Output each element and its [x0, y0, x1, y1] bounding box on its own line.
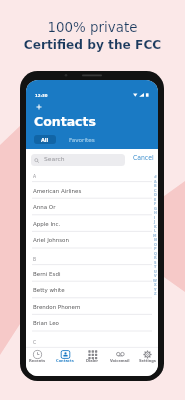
staticText: 12:30 — [35, 93, 48, 98]
button[interactable]: Recents — [26, 347, 50, 376]
staticText: C — [33, 340, 37, 345]
staticText: Settings — [139, 359, 156, 363]
staticText: B — [33, 257, 37, 262]
button[interactable]: Alphabet index — [151, 172, 158, 282]
button[interactable]: Ariel Johnson — [26, 231, 158, 248]
button[interactable]: Favorites — [69, 136, 95, 144]
button[interactable]: All — [34, 135, 56, 144]
button[interactable]: Settings — [134, 347, 158, 376]
staticText: U — [154, 270, 157, 274]
button[interactable]: Contacts — [52, 347, 78, 376]
button[interactable]: American Airlines — [26, 182, 158, 199]
button[interactable]: Betty white — [26, 281, 158, 298]
button[interactable]: Voicemail — [107, 347, 133, 376]
staticText: Contacts — [56, 359, 74, 363]
staticText: Anna Or — [33, 204, 56, 210]
button[interactable]: Apple Inc. — [26, 215, 158, 232]
staticText: Ariel Johnson — [33, 237, 69, 243]
staticText: Search — [44, 155, 65, 162]
button[interactable]: Berni Esdi — [26, 265, 158, 282]
staticText: X — [154, 283, 157, 287]
staticText: B — [154, 184, 157, 188]
staticText: H — [154, 211, 157, 215]
staticText: P — [154, 247, 157, 251]
staticText: G — [154, 207, 157, 211]
staticText: Apple Inc. — [33, 221, 61, 227]
staticText: T — [154, 265, 157, 269]
staticText: Betty white — [33, 287, 65, 293]
staticText: V — [154, 274, 157, 278]
staticText: Contacts — [34, 114, 96, 129]
button[interactable]: Anna Or — [26, 198, 158, 215]
button[interactable]: Search — [31, 154, 125, 166]
staticText: Favorites — [69, 137, 95, 144]
staticText: A — [33, 174, 37, 179]
staticText: All — [41, 137, 49, 143]
staticText: Z — [154, 292, 157, 296]
staticText: O — [154, 243, 157, 247]
staticText: F — [154, 202, 157, 206]
staticText: Brian Leo — [33, 320, 59, 326]
staticText: Recents — [29, 359, 46, 363]
staticText: A — [154, 180, 157, 184]
staticText: Voicemail — [110, 359, 130, 363]
staticText: L — [154, 229, 157, 233]
staticText: M — [153, 234, 157, 238]
staticText: Certified by the FCC — [0, 38, 185, 52]
staticText: # — [154, 175, 157, 179]
button[interactable]: Add contact — [34, 102, 44, 112]
button[interactable]: Brendon Phonem — [26, 298, 158, 315]
staticText: E — [154, 198, 157, 202]
button[interactable]: Brian Leo — [26, 314, 158, 331]
staticText: 100% private — [0, 20, 185, 36]
staticText: Dialer — [86, 359, 99, 363]
staticText: Brendon Phonem — [33, 304, 81, 310]
staticText: N — [154, 238, 157, 242]
staticText: D — [154, 193, 157, 197]
staticText: R — [154, 256, 157, 260]
staticText: Q — [154, 252, 157, 256]
button[interactable]: Dialer — [79, 347, 105, 376]
staticText: C — [154, 189, 157, 193]
staticText: W — [153, 279, 157, 283]
button[interactable]: Cancel — [133, 154, 154, 161]
staticText: Y — [154, 288, 157, 292]
staticText: S — [154, 261, 157, 265]
staticText: American Airlines — [33, 188, 82, 194]
staticText: I — [154, 216, 156, 220]
staticText: K — [154, 225, 157, 229]
staticText: Berni Esdi — [33, 271, 61, 277]
staticText: J — [154, 220, 156, 224]
